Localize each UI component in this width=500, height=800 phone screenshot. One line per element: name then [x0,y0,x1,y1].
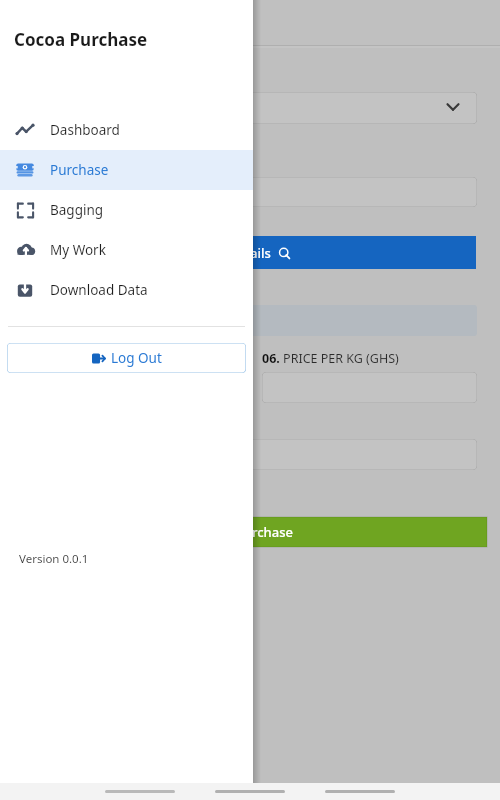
staticText: Cocoa Purchase [14,28,148,51]
staticText: My Work [50,241,106,259]
button[interactable] [262,372,477,403]
staticText: 06. PRICE PER KG (GHS) [262,350,399,367]
staticText: Download Data [50,281,148,299]
staticText: Bagging [50,201,104,219]
button[interactable] [170,177,477,207]
button[interactable]: Download Data [0,270,253,310]
staticText: rchase [252,523,293,541]
button[interactable]: My Work [0,230,253,270]
button[interactable]: rchase [150,517,487,547]
button[interactable]: Purchase [0,150,253,190]
button[interactable]: Dashboard [0,110,253,150]
button[interactable] [170,92,477,124]
button[interactable] [150,439,477,470]
staticText: Dashboard [50,121,120,139]
staticText: Version 0.0.1 [19,551,89,567]
staticText: ails [250,244,271,262]
staticText: Log Out [111,349,162,367]
button[interactable]: Log Out [7,343,246,373]
staticText: Purchase [50,161,109,179]
button[interactable]: Bagging [0,190,253,230]
button[interactable]: ails [150,236,476,269]
